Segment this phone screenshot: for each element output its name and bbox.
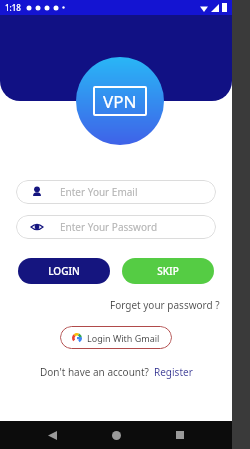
button[interactable]: Email field: [16, 180, 216, 204]
staticText: VPN: [103, 90, 137, 113]
button[interactable]: Forget your password ?: [0, 298, 220, 312]
button[interactable]: Register: [154, 365, 193, 379]
button[interactable]: Back: [40, 423, 64, 447]
staticText: LOGIN: [48, 264, 80, 278]
staticText: Enter Your Password: [60, 220, 158, 234]
button[interactable]: LOGIN: [18, 258, 110, 284]
staticText: Login With Gmail: [87, 332, 160, 344]
button[interactable]: Login With Gmail: [60, 326, 172, 349]
staticText: Don't have an account?: [40, 365, 149, 379]
button[interactable]: Recent apps: [168, 423, 192, 447]
staticText: Register: [154, 365, 193, 379]
button[interactable]: Password field: [16, 215, 216, 239]
other: VPN logo: [76, 57, 164, 145]
staticText: Enter Your Email: [60, 185, 138, 199]
button[interactable]: SKIP: [122, 258, 214, 284]
staticText: SKIP: [157, 264, 179, 278]
staticText: Forget your password ?: [110, 298, 220, 312]
button[interactable]: Home: [104, 423, 128, 447]
staticText: 1:18: [5, 2, 21, 13]
